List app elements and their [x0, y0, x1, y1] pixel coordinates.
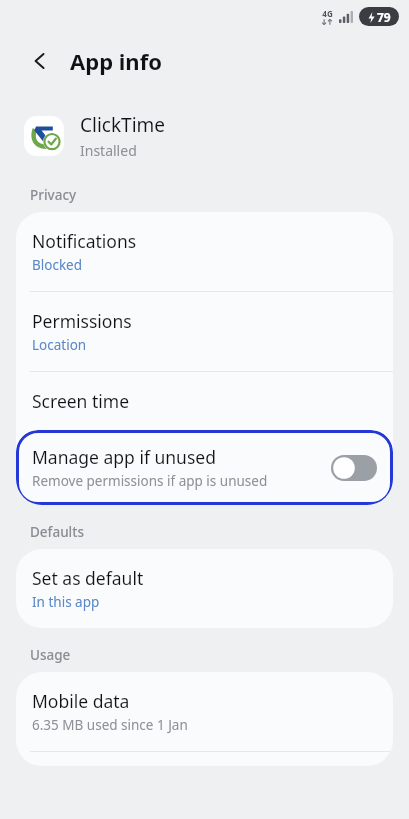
button[interactable]: Notifications — [16, 212, 393, 291]
button[interactable]: Permissions — [16, 292, 393, 371]
button[interactable]: Mobile data — [16, 672, 393, 751]
staticText: Mobile data — [32, 689, 130, 713]
staticText: In this app — [32, 593, 100, 611]
button[interactable]: Set as default — [16, 549, 393, 628]
staticText: Set as default — [32, 566, 144, 590]
staticText: Privacy — [30, 186, 77, 204]
staticText: App info — [70, 46, 162, 76]
staticText: Notifications — [32, 229, 137, 253]
staticText: 79 — [377, 9, 391, 25]
staticText: Defaults — [30, 523, 84, 541]
staticText: Screen time — [32, 389, 130, 413]
button[interactable]: Screen time — [16, 372, 393, 430]
staticText: Location — [32, 336, 87, 354]
staticText: Usage — [30, 646, 71, 664]
staticText: Installed — [80, 141, 137, 160]
staticText: Remove permissions if app is unused — [32, 472, 268, 490]
button[interactable]: Manage app if unused toggle — [331, 455, 377, 481]
staticText: 6.35 MB used since 1 Jan — [32, 716, 188, 734]
staticText: Permissions — [32, 309, 132, 333]
staticText: 4G — [322, 8, 333, 19]
staticText: ClickTime — [80, 112, 166, 138]
button[interactable]: Back — [24, 45, 56, 77]
button[interactable]: ClickTime — [24, 112, 409, 160]
staticText: Blocked — [32, 256, 83, 274]
staticText: Manage app if unused — [32, 445, 216, 469]
button[interactable]: Manage app if unused — [16, 430, 393, 505]
